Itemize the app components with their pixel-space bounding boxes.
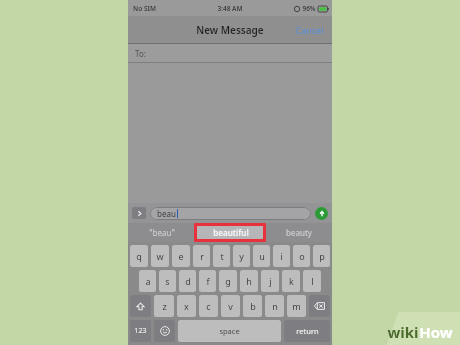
button[interactable]: Backspace: [309, 295, 330, 317]
button[interactable]: y: [233, 245, 250, 267]
staticText: h: [246, 275, 252, 287]
button[interactable]: n: [265, 295, 284, 317]
staticText: beau: [157, 208, 176, 219]
button[interactable]: b: [243, 295, 262, 317]
button[interactable]: c: [199, 295, 218, 317]
button[interactable]: Send: [315, 207, 328, 220]
staticText: k: [289, 275, 294, 287]
button[interactable]: z: [154, 295, 174, 317]
button[interactable]: f: [199, 270, 216, 292]
staticText: m: [292, 300, 301, 312]
staticText: return: [296, 326, 319, 336]
staticText: No SIM: [133, 4, 156, 13]
staticText: i: [280, 250, 283, 262]
button[interactable]: beauty: [265, 223, 332, 242]
staticText: u: [259, 250, 265, 262]
button[interactable]: More apps: [132, 207, 146, 219]
staticText: c: [206, 300, 211, 312]
staticText: v: [228, 300, 233, 312]
button[interactable]: h: [240, 270, 258, 292]
staticText: beautiful: [213, 227, 249, 238]
staticText: How: [419, 322, 453, 342]
staticText: p: [319, 250, 325, 262]
staticText: z: [162, 300, 167, 312]
staticText: beauty: [286, 227, 312, 238]
staticText: 123: [134, 326, 147, 336]
staticText: To:: [135, 48, 146, 59]
staticText: y: [239, 250, 244, 262]
button[interactable]: return: [284, 320, 330, 342]
button[interactable]: j: [261, 270, 279, 292]
button[interactable]: v: [221, 295, 240, 317]
staticText: n: [272, 300, 278, 312]
staticText: Cancel: [295, 24, 324, 36]
staticText: a: [145, 275, 151, 287]
staticText: g: [225, 275, 231, 287]
staticText: b: [250, 300, 256, 312]
button[interactable]: 123: [130, 320, 151, 342]
button[interactable]: Shift: [130, 295, 151, 317]
button[interactable]: e: [172, 245, 190, 267]
button[interactable]: Cancel: [287, 20, 332, 40]
button[interactable]: m: [287, 295, 306, 317]
staticText: o: [299, 250, 305, 262]
button[interactable]: q: [130, 245, 148, 267]
button[interactable]: "beau": [128, 223, 196, 242]
button[interactable]: r: [193, 245, 210, 267]
button[interactable]: p: [313, 245, 330, 267]
button[interactable]: w: [151, 245, 169, 267]
button[interactable]: a: [139, 270, 156, 292]
button[interactable]: i: [273, 245, 290, 267]
staticText: space: [219, 326, 240, 336]
staticText: 96%: [302, 4, 316, 13]
button[interactable]: t: [213, 245, 230, 267]
button[interactable]: beau: [150, 207, 311, 220]
button[interactable]: space: [178, 320, 281, 342]
button[interactable]: x: [177, 295, 196, 317]
staticText: wiki: [387, 322, 419, 342]
staticText: e: [178, 250, 184, 262]
staticText: w: [156, 250, 164, 262]
button[interactable]: k: [282, 270, 300, 292]
button[interactable]: Emoji: [154, 320, 175, 342]
button[interactable]: To:: [128, 44, 332, 63]
staticText: s: [165, 275, 170, 287]
button[interactable]: o: [293, 245, 310, 267]
staticText: q: [136, 250, 142, 262]
button[interactable]: l: [303, 270, 321, 292]
button[interactable]: s: [159, 270, 176, 292]
staticText: 3:48 AM: [217, 4, 243, 13]
staticText: l: [311, 275, 314, 287]
staticText: r: [200, 250, 204, 262]
staticText: t: [220, 250, 224, 262]
button[interactable]: d: [179, 270, 196, 292]
staticText: f: [206, 275, 210, 287]
staticText: New Message: [196, 23, 264, 37]
button[interactable]: beautiful: [197, 225, 264, 240]
staticText: j: [269, 275, 272, 287]
button[interactable]: u: [253, 245, 270, 267]
staticText: "beau": [149, 227, 175, 238]
staticText: d: [185, 275, 191, 287]
button[interactable]: g: [219, 270, 237, 292]
staticText: x: [184, 300, 189, 312]
